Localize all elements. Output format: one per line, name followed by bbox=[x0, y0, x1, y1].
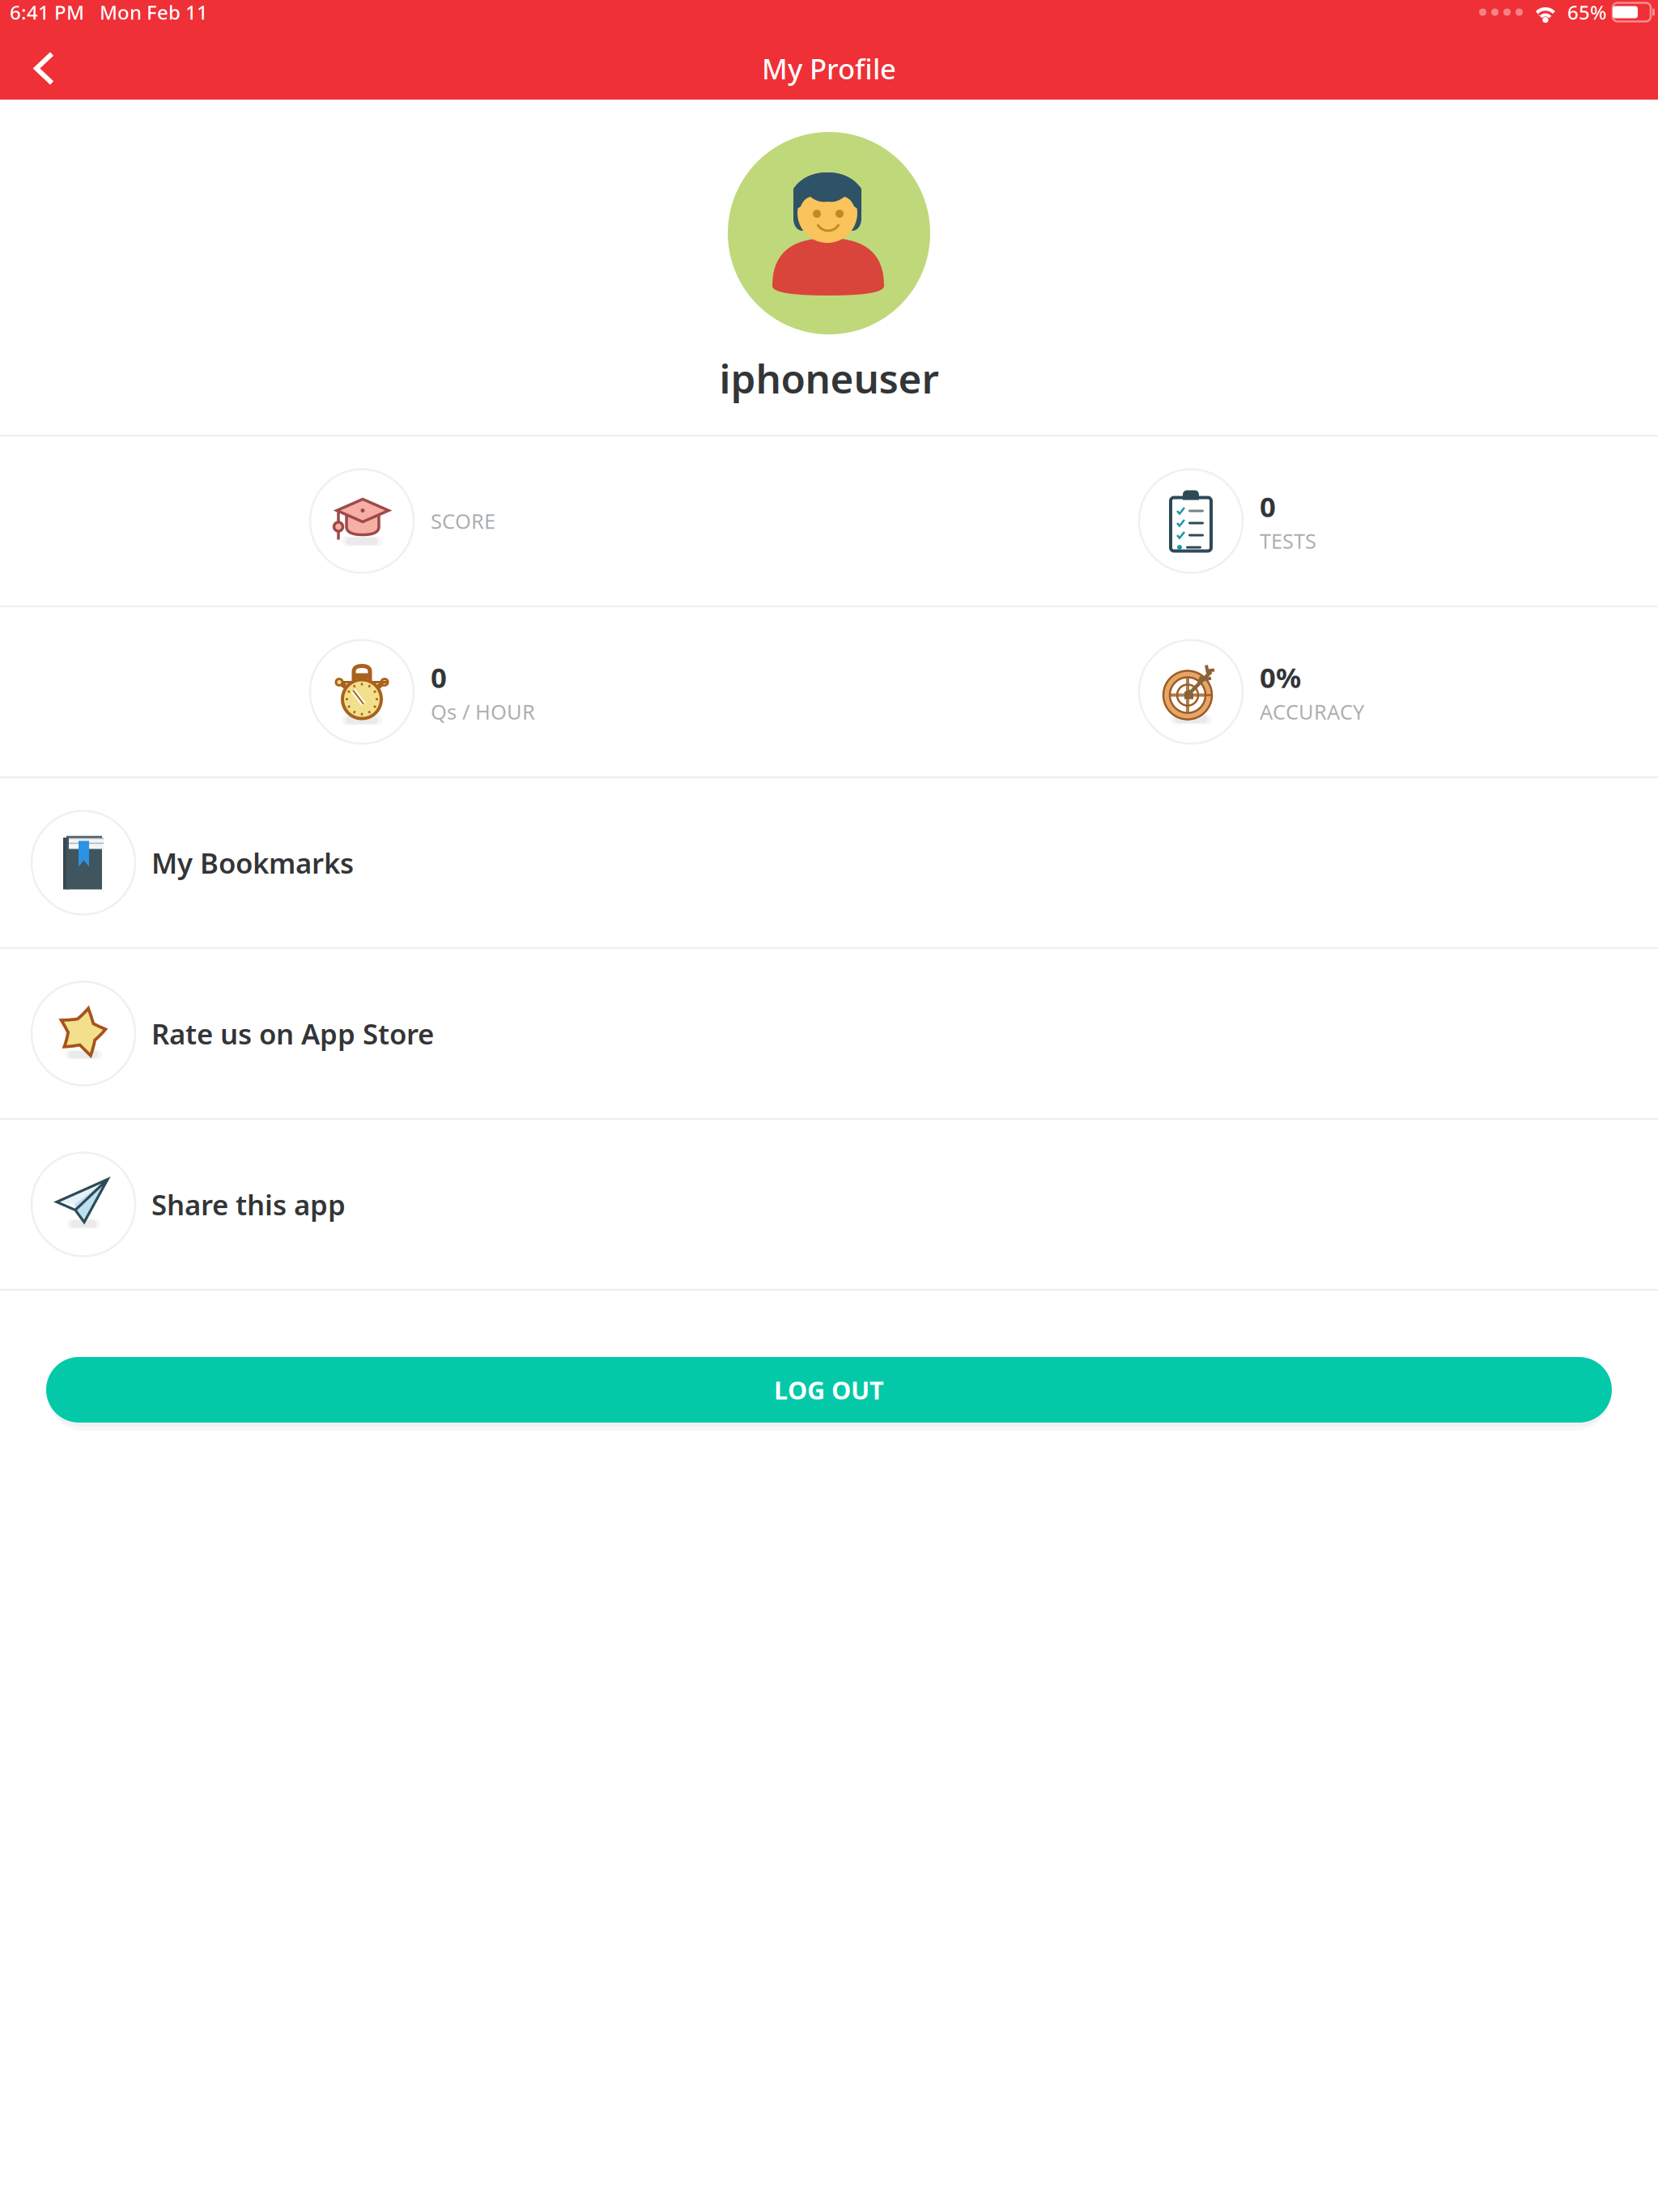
button[interactable]: Back bbox=[0, 38, 82, 98]
staticText: 0 bbox=[431, 658, 447, 696]
staticText: Rate us on App Store bbox=[151, 1015, 434, 1052]
button[interactable]: Share this app bbox=[0, 1120, 1658, 1289]
button[interactable]: My Bookmarks bbox=[0, 778, 1658, 947]
staticText: 6:41 PM bbox=[10, 0, 84, 25]
staticText: 0 bbox=[1260, 488, 1276, 525]
staticText: 0% bbox=[1260, 658, 1301, 696]
staticText: Mon Feb 11 bbox=[100, 0, 208, 25]
staticText: My Profile bbox=[762, 50, 896, 87]
staticText: iphoneuser bbox=[719, 351, 939, 404]
staticText: Share this app bbox=[151, 1186, 346, 1223]
staticText: LOG OUT bbox=[774, 1373, 884, 1406]
staticText: TESTS bbox=[1260, 527, 1316, 554]
button[interactable]: Rate us on App Store bbox=[0, 949, 1658, 1118]
staticText: My Bookmarks bbox=[151, 844, 354, 881]
staticText: ACCURACY bbox=[1260, 698, 1364, 725]
staticText: Qs / HOUR bbox=[431, 698, 535, 725]
staticText: SCORE bbox=[431, 507, 495, 535]
staticText: 65% bbox=[1567, 0, 1606, 25]
button[interactable]: LOG OUT bbox=[46, 1357, 1612, 1431]
